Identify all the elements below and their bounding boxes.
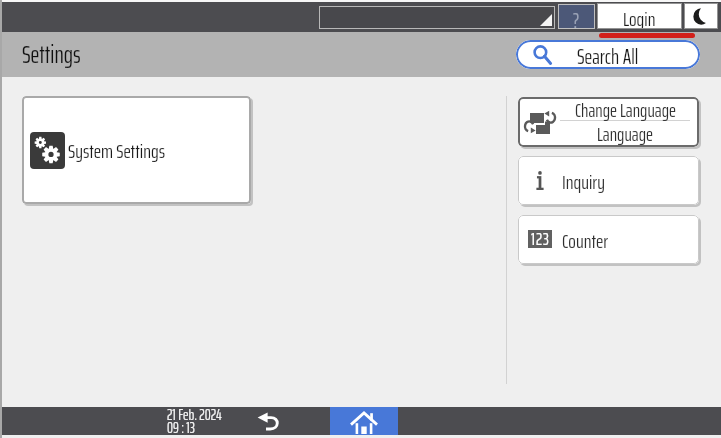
button[interactable]: Help [558, 4, 595, 29]
staticText: Settings [22, 36, 81, 74]
staticText: ? [573, 4, 580, 29]
button[interactable]: Search All [516, 40, 700, 69]
staticText: System Settings [68, 135, 166, 166]
staticText: Counter [562, 225, 609, 256]
staticText: Change Language [575, 97, 676, 123]
staticText: 09 : 13 [167, 416, 195, 438]
button[interactable]: Login [597, 3, 682, 29]
button[interactable]: 123 [518, 215, 699, 264]
staticText: Login [623, 3, 656, 29]
staticText: Search All [577, 40, 639, 69]
button[interactable]: Energy Saver [684, 3, 718, 29]
button[interactable]: Back [248, 407, 288, 435]
button[interactable]: Home [330, 407, 398, 435]
button[interactable]: Job status [319, 6, 555, 29]
staticText: Language [597, 119, 653, 147]
button[interactable]: System Settings [22, 96, 251, 204]
button[interactable]: Change Language [518, 97, 699, 147]
staticText: 21 Feb. 2024 [167, 403, 222, 425]
staticText: Inquiry [562, 166, 605, 197]
button[interactable]: Inquiry [518, 156, 699, 205]
staticText: 123 [531, 226, 550, 253]
